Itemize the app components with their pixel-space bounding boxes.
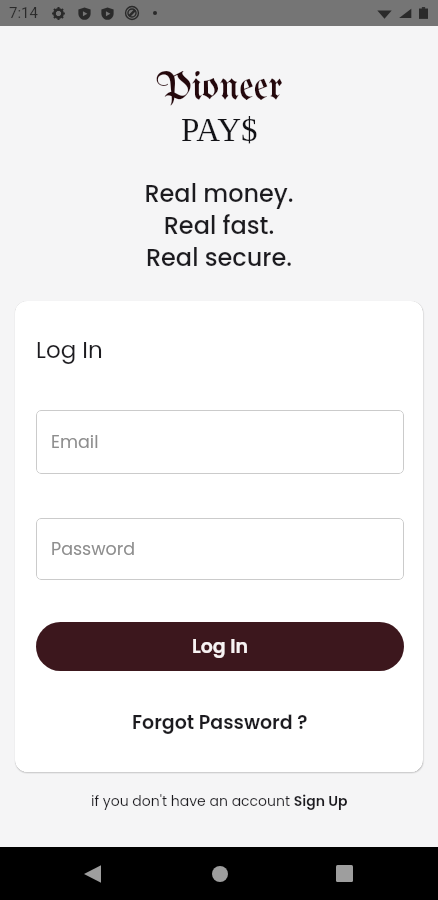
button[interactable]: Home (196, 850, 243, 897)
staticText: Log In (36, 334, 103, 366)
staticText: Log In (192, 633, 249, 660)
staticText: 7:14 (9, 4, 38, 22)
staticText: Real money. Real fast. Real secure. (144, 177, 294, 275)
button[interactable]: Forgot Password ? (36, 709, 404, 736)
staticText: Password (51, 537, 136, 562)
staticText: Email (51, 430, 99, 455)
button[interactable]: Email (36, 410, 404, 474)
staticText: PAY$ (181, 112, 258, 149)
button[interactable]: if you don't have an account Sign Up (91, 791, 348, 811)
button[interactable]: Log In (36, 622, 404, 671)
button[interactable]: Password (36, 518, 404, 580)
staticText: Pioneer (156, 68, 283, 109)
button[interactable]: Back (69, 850, 116, 897)
button[interactable]: Recent apps (321, 850, 368, 897)
staticText: Forgot Password ? (132, 709, 308, 736)
